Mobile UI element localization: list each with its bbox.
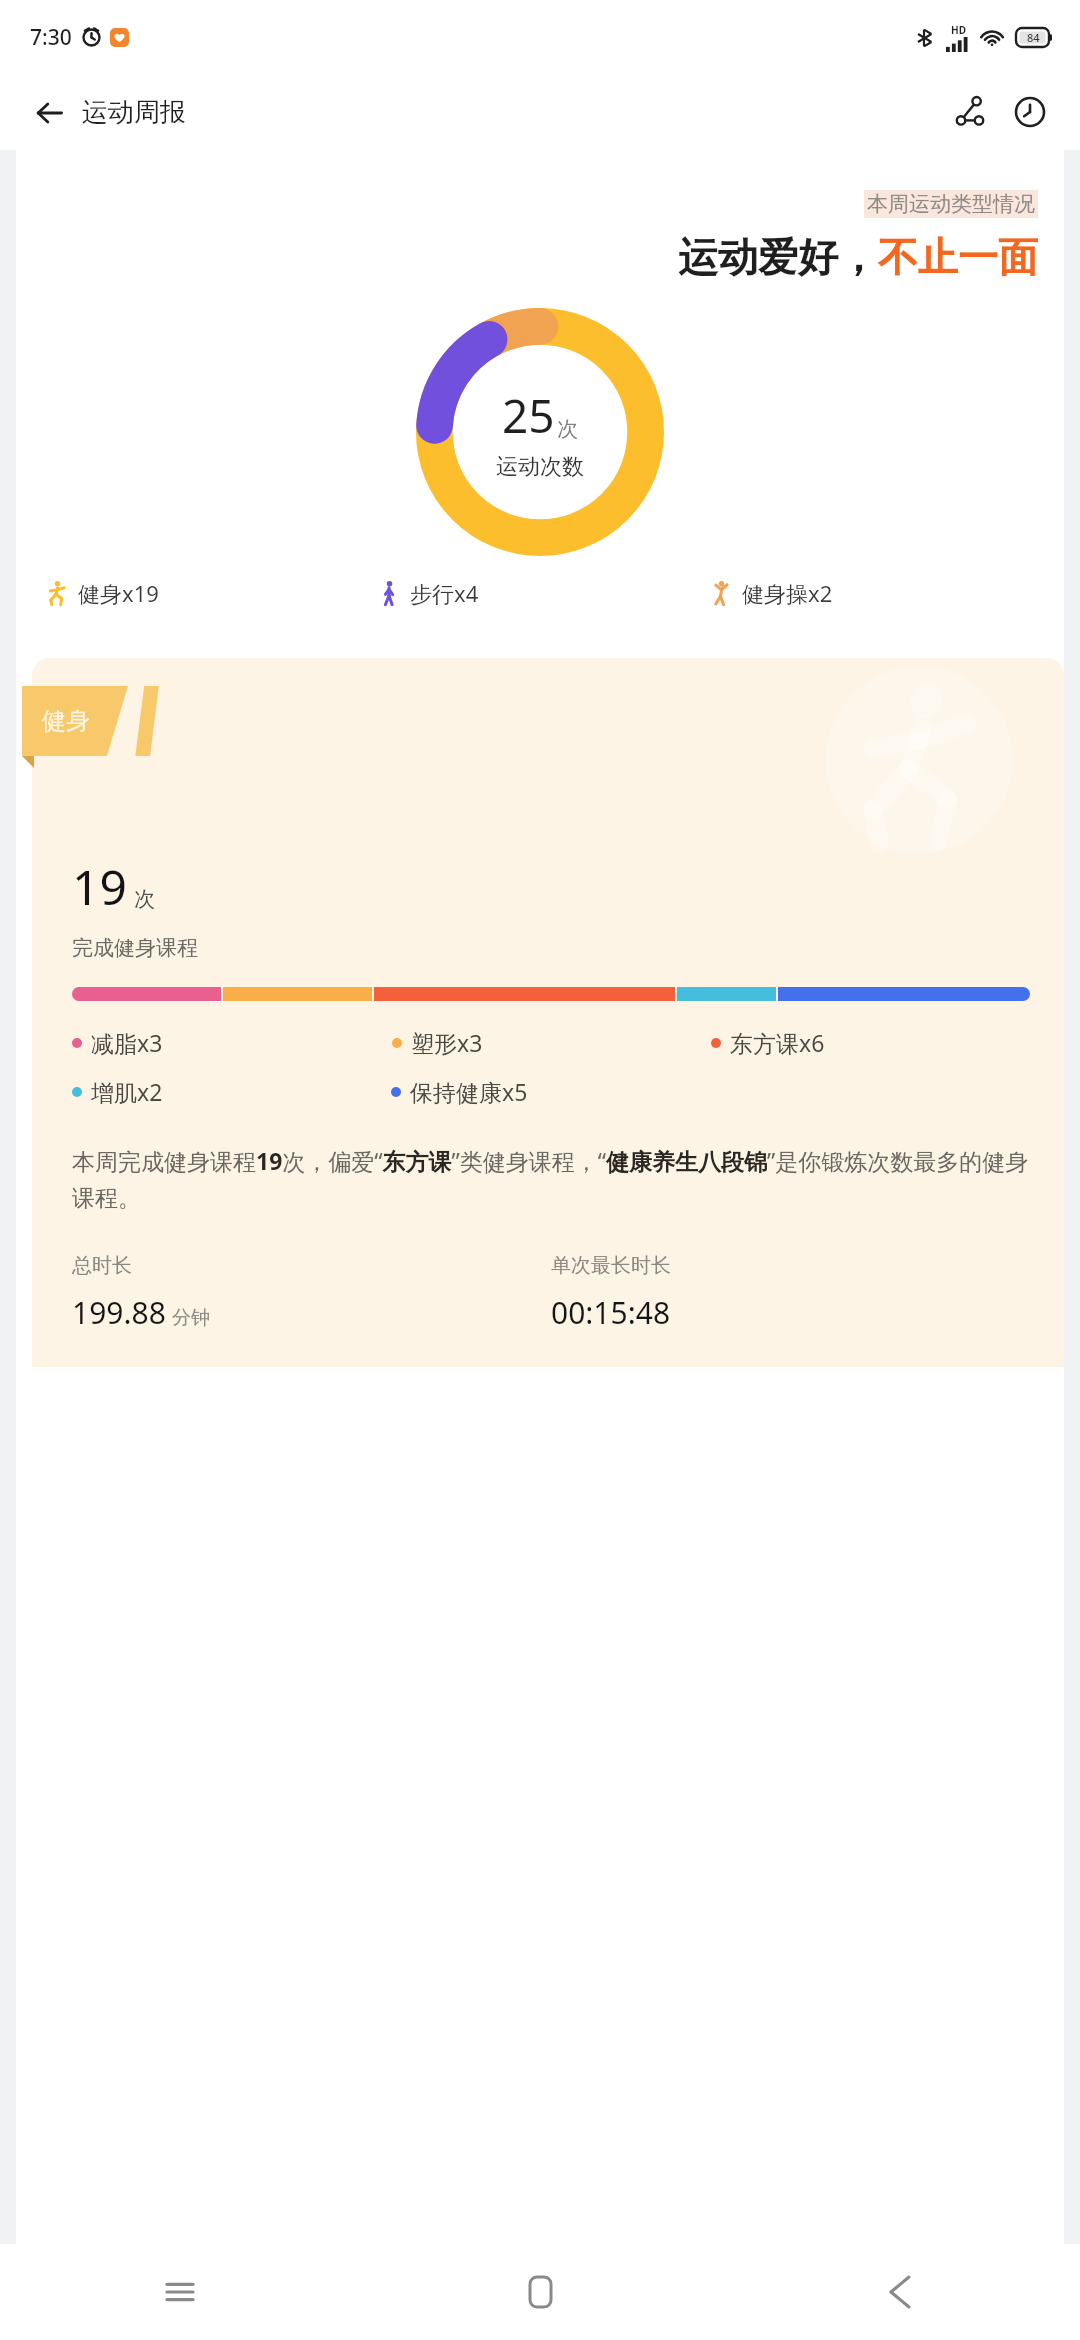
- staticText: 199.88: [72, 1292, 166, 1333]
- button[interactable]: 健身x19: [44, 578, 376, 608]
- staticText: 本周完成健身课程19次，偏爱“东方课”类健身课程，“健康养生八段锦”是你锻炼次数…: [72, 1145, 1030, 1213]
- staticText: 00:15:48: [551, 1292, 671, 1333]
- staticText: 运动周报: [82, 96, 186, 129]
- staticText: 增肌x2: [91, 1076, 163, 1107]
- button[interactable]: 东方课x6: [711, 1027, 1030, 1058]
- staticText: 保持健康x5: [410, 1076, 528, 1107]
- button[interactable]: Home: [360, 2244, 720, 2340]
- button[interactable]: 塑形x3: [392, 1027, 711, 1058]
- staticText: 健身x19: [78, 578, 159, 608]
- staticText: 运动爱好，不止一面: [678, 232, 1038, 282]
- staticText: 塑形x3: [411, 1027, 483, 1058]
- button[interactable]: History: [1008, 90, 1052, 134]
- button[interactable]: Back: [720, 2244, 1080, 2340]
- staticText: 本周运动类型情况: [867, 191, 1035, 217]
- staticText: 次: [557, 416, 578, 442]
- staticText: 步行x4: [410, 578, 479, 608]
- staticText: HD: [951, 23, 966, 37]
- button[interactable]: Share: [948, 90, 992, 134]
- button[interactable]: Recents: [0, 2244, 360, 2340]
- button[interactable]: 保持健康x5: [391, 1076, 1030, 1107]
- staticText: 84: [1027, 30, 1040, 45]
- staticText: 分钟: [172, 1306, 210, 1330]
- staticText: 健身操x2: [742, 578, 833, 608]
- staticText: 总时长: [72, 1253, 132, 1278]
- staticText: 单次最长时长: [551, 1253, 671, 1278]
- button[interactable]: 增肌x2: [72, 1076, 391, 1107]
- button[interactable]: 减脂x3: [72, 1027, 392, 1058]
- staticText: 运动次数: [496, 453, 584, 481]
- staticText: 减脂x3: [91, 1027, 163, 1058]
- staticText: 25: [502, 384, 555, 447]
- button[interactable]: 19: [32, 658, 1064, 1367]
- staticText: 19: [72, 854, 127, 919]
- staticText: 7:30: [30, 23, 72, 52]
- button[interactable]: 步行x4: [376, 578, 708, 608]
- other: Back: [34, 98, 64, 128]
- staticText: 完成健身课程: [72, 935, 198, 961]
- button[interactable]: 健身操x2: [708, 578, 1040, 608]
- staticText: 健身: [42, 706, 90, 736]
- staticText: 东方课x6: [730, 1027, 825, 1058]
- staticText: 次: [134, 886, 155, 912]
- button[interactable]: Back: [34, 96, 186, 129]
